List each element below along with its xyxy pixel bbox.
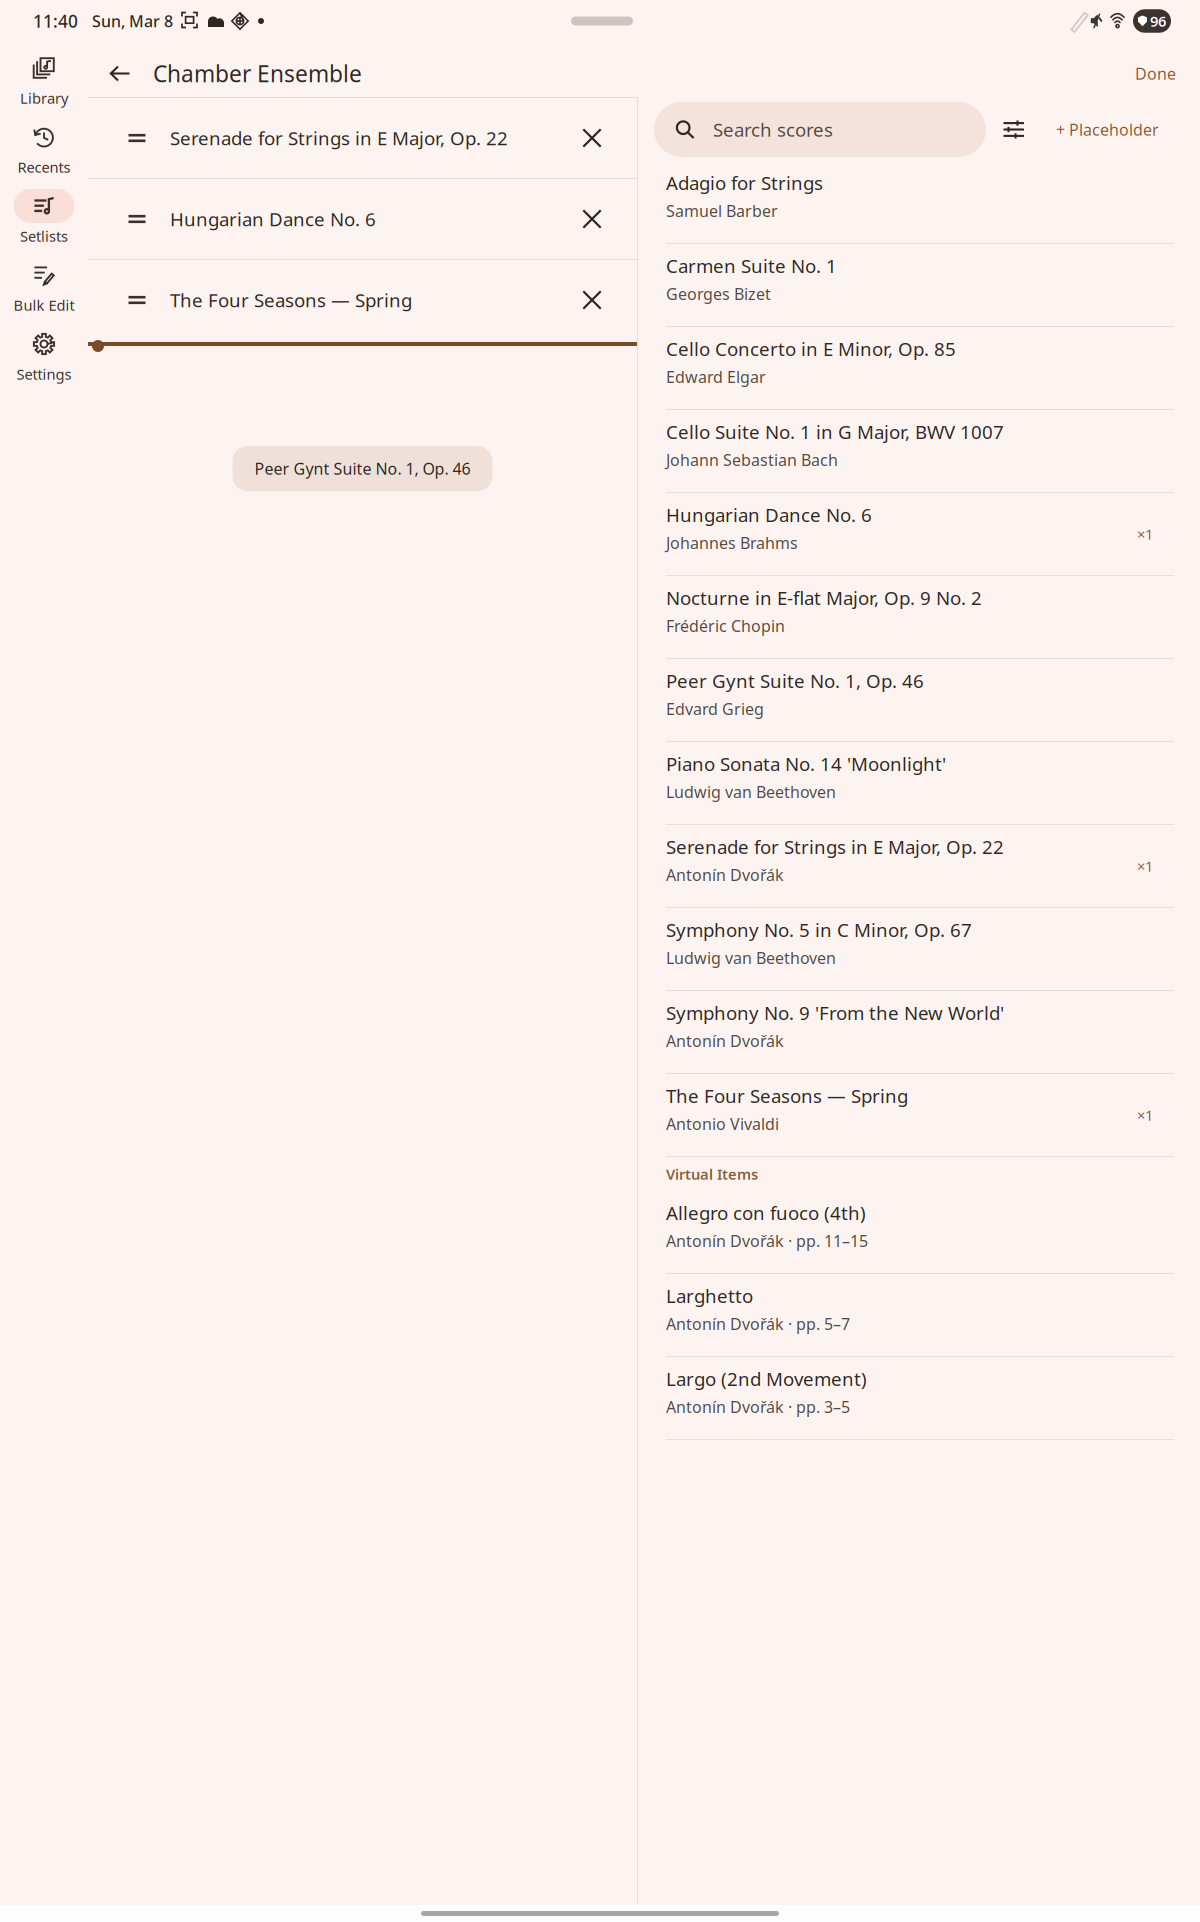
staticText: Symphony No. 5 in C Minor, Op. 67 [666,917,972,942]
button[interactable]: Settings [0,325,88,385]
staticText: Hungarian Dance No. 6 [170,207,376,231]
button[interactable]: Carmen Suite No. 1 [638,244,1200,326]
staticText: Setlists [20,226,68,246]
staticText: Piano Sonata No. 14 'Moonlight' [666,751,946,776]
staticText: Antonín Dvořák · pp. 5–7 [666,1313,850,1334]
button[interactable]: Setlists [0,187,88,247]
button[interactable]: Serenade for Strings in E Major, Op. 22 [638,825,1200,907]
staticText: Hungarian Dance No. 6 [666,502,872,527]
staticText: + Placeholder [1056,119,1159,140]
staticText: Done [1135,63,1176,84]
button[interactable]: Largo (2nd Movement) [638,1357,1200,1439]
staticText: Frédéric Chopin [666,615,785,636]
button[interactable]: Hungarian Dance No. 6 [638,493,1200,575]
staticText: Antonio Vivaldi [666,1113,779,1134]
staticText: Allegro con fuoco (4th) [666,1200,866,1225]
staticText: Bulk Edit [13,295,74,315]
button[interactable]: Piano Sonata No. 14 'Moonlight' [638,742,1200,824]
staticText: Nocturne in E-flat Major, Op. 9 No. 2 [666,585,982,610]
staticText: Johann Sebastian Bach [666,449,838,470]
staticText: Adagio for Strings [666,170,823,195]
staticText: Edvard Grieg [666,698,764,719]
button[interactable]: Symphony No. 5 in C Minor, Op. 67 [638,908,1200,990]
button[interactable]: Remove The Four Seasons — Spring [564,272,620,328]
button[interactable]: Remove Hungarian Dance No. 6 [564,191,620,247]
staticText: The Four Seasons — Spring [170,288,412,312]
staticText: Antonín Dvořák [666,864,784,885]
button[interactable]: Symphony No. 9 'From the New World' [638,991,1200,1073]
staticText: Search scores [713,117,833,142]
button[interactable]: Bulk Edit [0,256,88,316]
button[interactable]: Nocturne in E-flat Major, Op. 9 No. 2 [638,576,1200,658]
button[interactable]: Library [0,49,88,109]
staticText: Antonín Dvořák [666,1030,784,1051]
staticText: Antonín Dvořák · pp. 3–5 [666,1396,850,1417]
staticText: Serenade for Strings in E Major, Op. 22 [666,834,1004,859]
staticText: 96 [1150,11,1166,31]
button[interactable]: The Four Seasons — Spring [638,1074,1200,1156]
button[interactable]: Cello Suite No. 1 in G Major, BWV 1007 [638,410,1200,492]
staticText: Georges Bizet [666,283,771,304]
staticText: Antonín Dvořák · pp. 11–15 [666,1230,868,1251]
staticText: Largo (2nd Movement) [666,1366,867,1391]
button[interactable]: + Placeholder [1026,109,1159,150]
staticText: Larghetto [666,1283,753,1308]
staticText: Serenade for Strings in E Major, Op. 22 [170,126,508,150]
button[interactable]: Remove Serenade for Strings in E Major, … [564,110,620,166]
staticText: Johannes Brahms [666,532,798,553]
staticText: Carmen Suite No. 1 [666,253,837,278]
staticText: Peer Gynt Suite No. 1, Op. 46 [254,458,470,479]
staticText: ×1 [1137,856,1153,876]
staticText: ×1 [1137,524,1153,544]
staticText: Edward Elgar [666,366,766,387]
button[interactable]: Filters [1002,107,1026,151]
staticText: Virtual Items [666,1164,758,1184]
staticText: ×1 [1137,1105,1153,1125]
staticText: Ludwig van Beethoven [666,947,836,968]
staticText: Peer Gynt Suite No. 1, Op. 46 [666,668,924,693]
staticText: The Four Seasons — Spring [666,1083,908,1108]
staticText: Cello Concerto in E Minor, Op. 85 [666,336,956,361]
staticText: Cello Suite No. 1 in G Major, BWV 1007 [666,419,1004,444]
button[interactable]: Adagio for Strings [638,161,1200,243]
button[interactable]: Peer Gynt Suite No. 1, Op. 46 [638,659,1200,741]
button[interactable]: Recents [0,118,88,178]
button[interactable]: Back [100,51,140,95]
staticText: Chamber Ensemble [153,58,362,88]
staticText: Recents [17,157,70,177]
staticText: Samuel Barber [666,200,778,221]
button[interactable]: Allegro con fuoco (4th) [638,1191,1200,1273]
button[interactable]: Done [1123,53,1188,94]
staticText: Library [20,88,68,108]
button[interactable]: Cello Concerto in E Minor, Op. 85 [638,327,1200,409]
staticText: 11:40 [33,9,78,32]
staticText: Ludwig van Beethoven [666,781,836,802]
button[interactable]: Larghetto [638,1274,1200,1356]
staticText: Settings [16,364,71,384]
staticText: Sun, Mar 8 [92,10,173,32]
staticText: Symphony No. 9 'From the New World' [666,1000,1004,1025]
